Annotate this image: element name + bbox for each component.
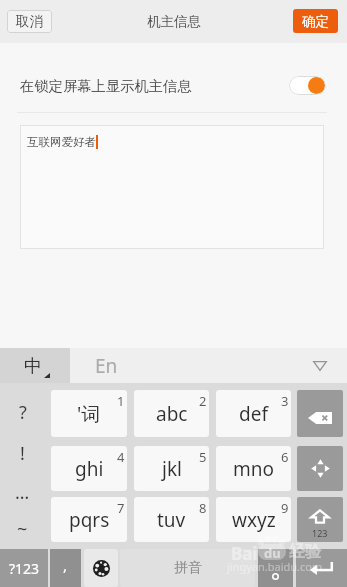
- button[interactable]: En: [70, 348, 347, 383]
- button[interactable]: Hide keyboard: [311, 357, 329, 375]
- staticText: 6: [281, 448, 289, 466]
- staticText: 在锁定屏幕上显示机主信息: [20, 77, 192, 95]
- staticText: 互联网爱好者: [27, 135, 96, 149]
- button[interactable]: Enter: [296, 549, 347, 587]
- staticText: ?: [19, 400, 27, 425]
- button[interactable]: pqrs: [51, 497, 127, 542]
- button[interactable]: '词: [51, 390, 127, 437]
- button[interactable]: jkl: [134, 446, 209, 491]
- staticText: 取消: [16, 13, 43, 30]
- staticText: 9: [281, 499, 289, 517]
- staticText: abc: [156, 401, 188, 427]
- staticText: jkl: [162, 456, 182, 482]
- button[interactable]: ghi: [51, 446, 127, 491]
- button[interactable]: 互联网爱好者: [20, 125, 324, 249]
- staticText: 确定: [302, 13, 329, 30]
- button[interactable]: ,: [50, 549, 81, 587]
- staticText: 拼音: [174, 559, 202, 577]
- staticText: !: [20, 441, 25, 466]
- button[interactable]: Period: [258, 549, 293, 587]
- staticText: 1: [117, 392, 125, 410]
- button[interactable]: Change input language: [84, 549, 118, 587]
- staticText: def: [239, 401, 268, 427]
- staticText: pqrs: [69, 507, 110, 533]
- button[interactable]: !: [0, 434, 45, 472]
- staticText: Bai: [231, 542, 258, 565]
- button[interactable]: mno: [216, 446, 291, 491]
- button[interactable]: tuv: [134, 497, 209, 542]
- staticText: '词: [77, 401, 101, 427]
- button[interactable]: Switch to numbers: [297, 497, 343, 542]
- button[interactable]: 取消: [7, 10, 52, 33]
- button[interactable]: …: [0, 473, 45, 511]
- button[interactable]: ?: [0, 393, 45, 431]
- button[interactable]: Move cursor: [297, 446, 343, 491]
- staticText: En: [95, 353, 118, 379]
- button[interactable]: Backspace: [297, 390, 343, 437]
- button[interactable]: wxyz: [216, 497, 291, 542]
- button[interactable]: 拼音: [120, 549, 255, 587]
- staticText: 3: [281, 392, 289, 410]
- staticText: mno: [233, 456, 275, 482]
- staticText: 4: [117, 448, 125, 466]
- button[interactable]: 中: [0, 348, 70, 383]
- staticText: 2: [199, 392, 207, 410]
- staticText: 123: [312, 527, 328, 539]
- staticText: 5: [199, 448, 207, 466]
- staticText: …: [15, 480, 30, 505]
- staticText: ~: [17, 517, 28, 542]
- button[interactable]: 确定: [293, 9, 338, 33]
- staticText: 8: [199, 499, 207, 517]
- button[interactable]: ?123: [0, 549, 48, 587]
- button[interactable]: 在锁定屏幕上显示机主信息: [0, 52, 347, 119]
- staticText: 经验: [289, 542, 321, 562]
- staticText: du: [264, 544, 281, 560]
- staticText: 机主信息: [147, 13, 201, 30]
- staticText: 中: [24, 355, 42, 378]
- button[interactable]: def: [216, 390, 291, 437]
- staticText: ?123: [9, 559, 40, 578]
- staticText: 7: [117, 499, 125, 517]
- button[interactable]: abc: [134, 390, 209, 437]
- staticText: tuv: [157, 507, 186, 533]
- staticText: ,: [63, 555, 68, 575]
- staticText: wxyz: [232, 507, 276, 533]
- button[interactable]: ~: [0, 510, 45, 548]
- staticText: jingyan.baidu.com: [227, 559, 323, 574]
- staticText: ghi: [75, 456, 104, 482]
